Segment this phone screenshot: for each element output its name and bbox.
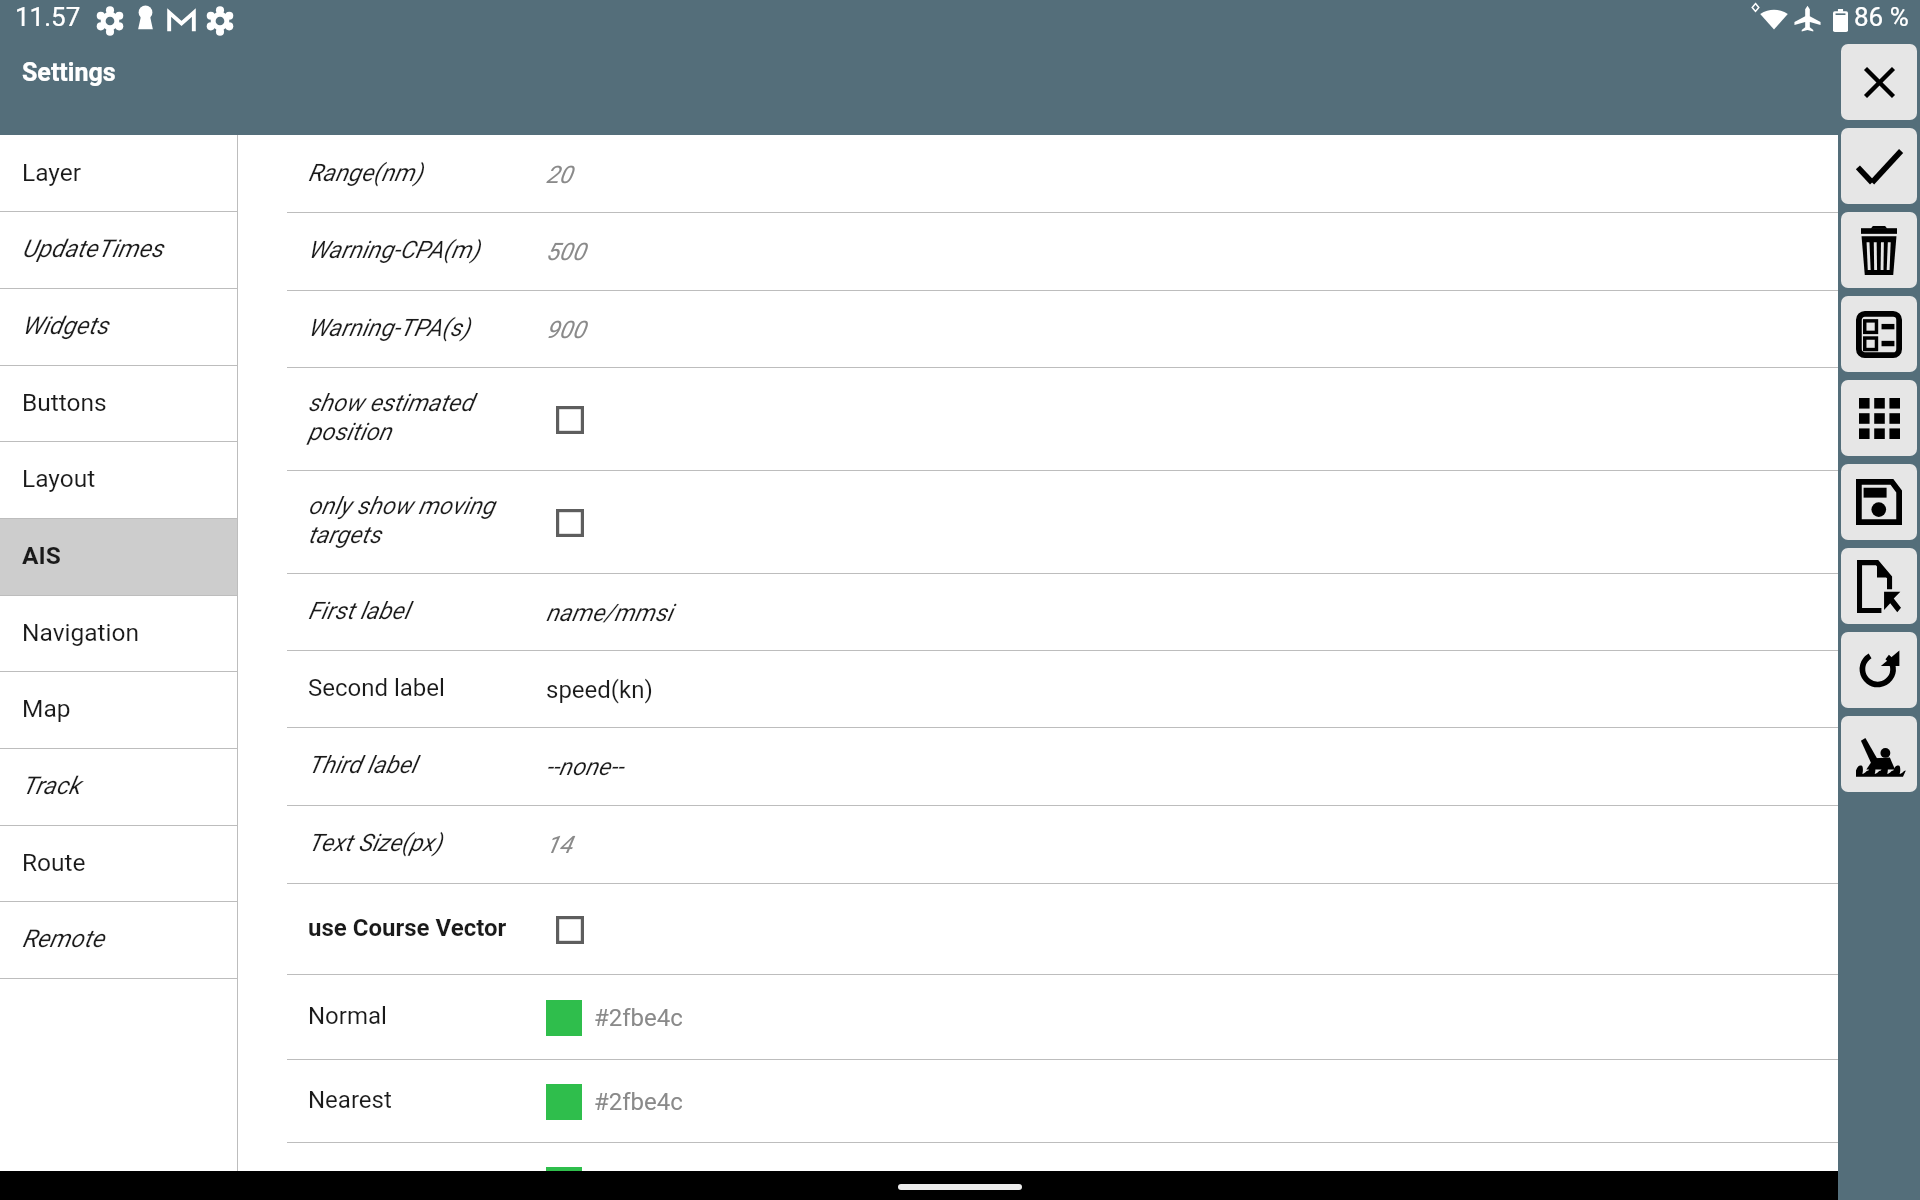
button[interactable]: Buttons xyxy=(0,366,237,442)
staticText: use Course Vector xyxy=(308,914,507,942)
staticText: name/mmsi xyxy=(546,599,673,627)
button[interactable]: Map xyxy=(0,672,237,749)
staticText: speed(kn) xyxy=(546,676,653,704)
button[interactable]: List xyxy=(1841,296,1917,372)
staticText: Text Size(px) xyxy=(308,829,442,857)
button[interactable]: Delete xyxy=(1841,212,1917,288)
staticText: UpdateTimes xyxy=(22,234,164,263)
button[interactable]: Confirm xyxy=(1841,128,1917,204)
staticText: Widgets xyxy=(22,311,109,340)
button[interactable]: use Course Vector xyxy=(238,884,1920,975)
button[interactable]: UpdateTimes xyxy=(0,212,237,289)
button[interactable]: Text Size(px) xyxy=(238,806,1920,884)
staticText: Remote xyxy=(22,924,105,953)
button[interactable]: Layer xyxy=(0,136,237,212)
button[interactable]: Man overboard xyxy=(1841,716,1917,792)
staticText: 900 xyxy=(546,316,586,344)
staticText: Normal xyxy=(308,1002,387,1030)
staticText: Layout xyxy=(22,464,96,493)
button[interactable]: Remote xyxy=(0,902,237,979)
button[interactable]: Save xyxy=(1841,464,1917,540)
button[interactable]: Second label xyxy=(238,651,1920,728)
staticText: 500 xyxy=(546,238,586,266)
staticText: 14 xyxy=(546,831,573,859)
staticText: show estimated position xyxy=(308,389,474,446)
button[interactable]: Normal xyxy=(238,975,1920,1060)
button[interactable]: Layout xyxy=(0,442,237,519)
button[interactable]: Import xyxy=(1841,548,1917,624)
button[interactable]: First label xyxy=(238,574,1920,651)
staticText: 20 xyxy=(546,161,573,189)
button[interactable]: Route xyxy=(0,826,237,902)
staticText: #2fbe4c xyxy=(594,1088,683,1116)
staticText: Warning-TPA(s) xyxy=(308,314,470,342)
staticText: First label xyxy=(308,597,410,625)
staticText: Warning-CPA(m) xyxy=(308,236,480,264)
staticText: Track xyxy=(22,771,81,800)
button[interactable]: only show moving targets xyxy=(238,471,1920,574)
staticText: Nearest xyxy=(308,1086,392,1114)
button[interactable]: Grid xyxy=(1841,380,1917,456)
button[interactable]: Widgets xyxy=(0,289,237,366)
staticText: Map xyxy=(22,694,71,723)
button[interactable]: Warning-CPA(m) xyxy=(238,213,1920,291)
staticText: only show moving targets xyxy=(308,492,495,549)
staticText: Settings xyxy=(22,58,116,87)
staticText: Third label xyxy=(308,751,417,779)
staticText: Second label xyxy=(308,674,445,702)
staticText: AIS xyxy=(22,541,61,570)
button[interactable]: AIS xyxy=(0,519,237,596)
button[interactable]: Close xyxy=(1841,44,1917,120)
button[interactable]: Track xyxy=(0,749,237,826)
staticText: Buttons xyxy=(22,388,107,417)
button[interactable]: Third label xyxy=(238,728,1920,806)
button[interactable]: #2fbe4c xyxy=(238,1143,1920,1200)
staticText: 11.57 xyxy=(15,2,81,32)
staticText: Layer xyxy=(22,158,82,187)
button[interactable]: Navigation xyxy=(0,596,237,672)
button[interactable]: Range(nm) xyxy=(238,136,1920,213)
staticText: --none-- xyxy=(546,753,624,781)
staticText: Route xyxy=(22,848,86,877)
staticText: #2fbe4c xyxy=(594,1004,683,1032)
button[interactable]: Refresh xyxy=(1841,632,1917,708)
button[interactable]: Warning-TPA(s) xyxy=(238,291,1920,368)
button[interactable]: Nearest xyxy=(238,1060,1920,1143)
button[interactable]: show estimated position xyxy=(238,368,1920,471)
staticText: Navigation xyxy=(22,618,140,647)
staticText: 86 % xyxy=(1854,2,1909,32)
staticText: Range(nm) xyxy=(308,159,423,187)
